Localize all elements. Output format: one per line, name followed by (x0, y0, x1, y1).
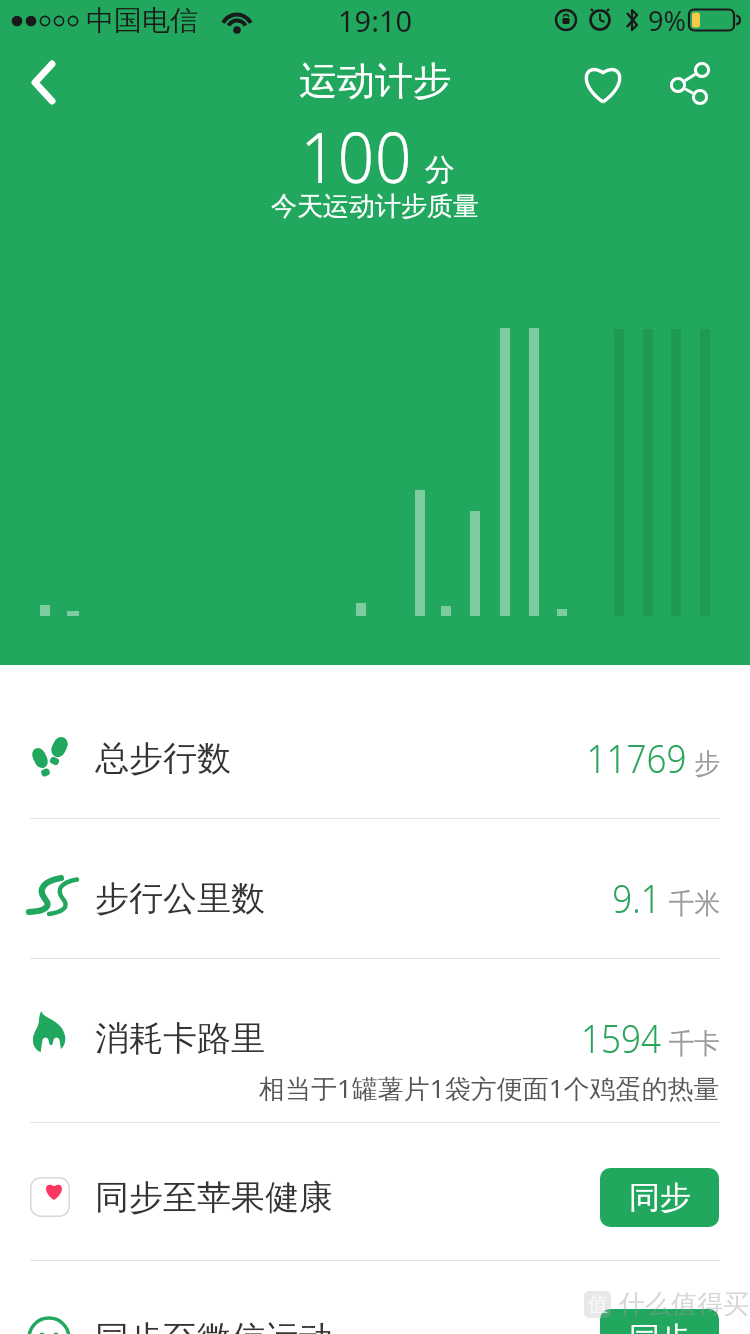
button[interactable]: 消耗卡路里 (0, 995, 750, 1081)
staticText: 同步 (629, 1319, 691, 1334)
staticText: 同步至苹果健康 (95, 1176, 333, 1219)
button[interactable] (578, 58, 628, 108)
staticText: 1594 (581, 1012, 661, 1064)
staticText: 同步至微信运动 (95, 1317, 333, 1334)
staticText: 什么值得买 (619, 1288, 749, 1321)
staticText: 运动计步 (299, 57, 451, 105)
button[interactable] (0, 40, 70, 128)
staticText: 中国电信 (86, 3, 198, 38)
staticText: 11769 (587, 732, 687, 784)
staticText: 同步 (629, 1178, 691, 1217)
button[interactable]: 总步行数 (0, 715, 750, 801)
staticText: 分 (425, 151, 455, 189)
staticText: 19:10 (338, 1, 413, 40)
staticText: 值 (588, 1292, 608, 1317)
button[interactable]: 同步 (600, 1168, 719, 1227)
staticText: 今天运动计步质量 (271, 190, 479, 223)
staticText: 步 (694, 746, 720, 781)
staticText: 9.1 (612, 872, 661, 924)
staticText: 步行公里数 (95, 877, 265, 920)
button[interactable]: 同步至苹果健康 (0, 1154, 750, 1240)
staticText: 消耗卡路里 (95, 1017, 265, 1060)
button[interactable] (664, 58, 716, 110)
staticText: 100 (300, 108, 412, 203)
button[interactable]: 同步至微信运动 (0, 1295, 750, 1334)
button[interactable]: 步行公里数 (0, 855, 750, 941)
staticText: 相当于1罐薯片1袋方便面1个鸡蛋的热量 (259, 1070, 720, 1106)
staticText: 千米 (668, 886, 720, 921)
button[interactable]: 同步 (600, 1309, 719, 1334)
staticText: 9% (648, 2, 686, 39)
staticText: 总步行数 (95, 737, 231, 780)
staticText: 千卡 (668, 1026, 720, 1061)
